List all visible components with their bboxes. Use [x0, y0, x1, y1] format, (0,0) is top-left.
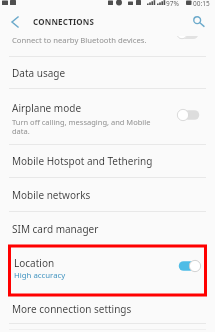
staticText: Airplane mode	[12, 101, 82, 115]
staticText: High accuracy	[14, 270, 66, 281]
button[interactable]: Search	[186, 10, 212, 33]
staticText: More connection settings	[12, 302, 132, 316]
button[interactable]: Airplane mode	[0, 89, 215, 144]
staticText: CONNECTIONS	[33, 16, 95, 27]
button[interactable]: Location	[0, 245, 215, 297]
staticText: 97%	[166, 0, 179, 8]
button[interactable]: Back	[2, 10, 28, 33]
button[interactable]: Mobile networks	[0, 178, 215, 211]
button[interactable]: Mobile Hotspot and Tethering	[0, 145, 215, 177]
staticText: Location	[14, 256, 55, 270]
staticText: Mobile Hotspot and Tethering	[12, 154, 153, 168]
button[interactable]: Data usage	[0, 57, 215, 88]
staticText: Turn off calling, messaging, and Mobile …	[12, 117, 151, 136]
staticText: SIM card manager	[12, 222, 99, 236]
staticText: Data usage	[12, 66, 66, 80]
button[interactable]: More connection settings	[0, 297, 215, 323]
staticText: Connect to nearby Bluetooth devices.	[12, 35, 147, 45]
staticText: 00:15	[193, 0, 210, 8]
button[interactable]: SIM card manager	[0, 212, 215, 245]
staticText: Mobile networks	[12, 188, 91, 202]
